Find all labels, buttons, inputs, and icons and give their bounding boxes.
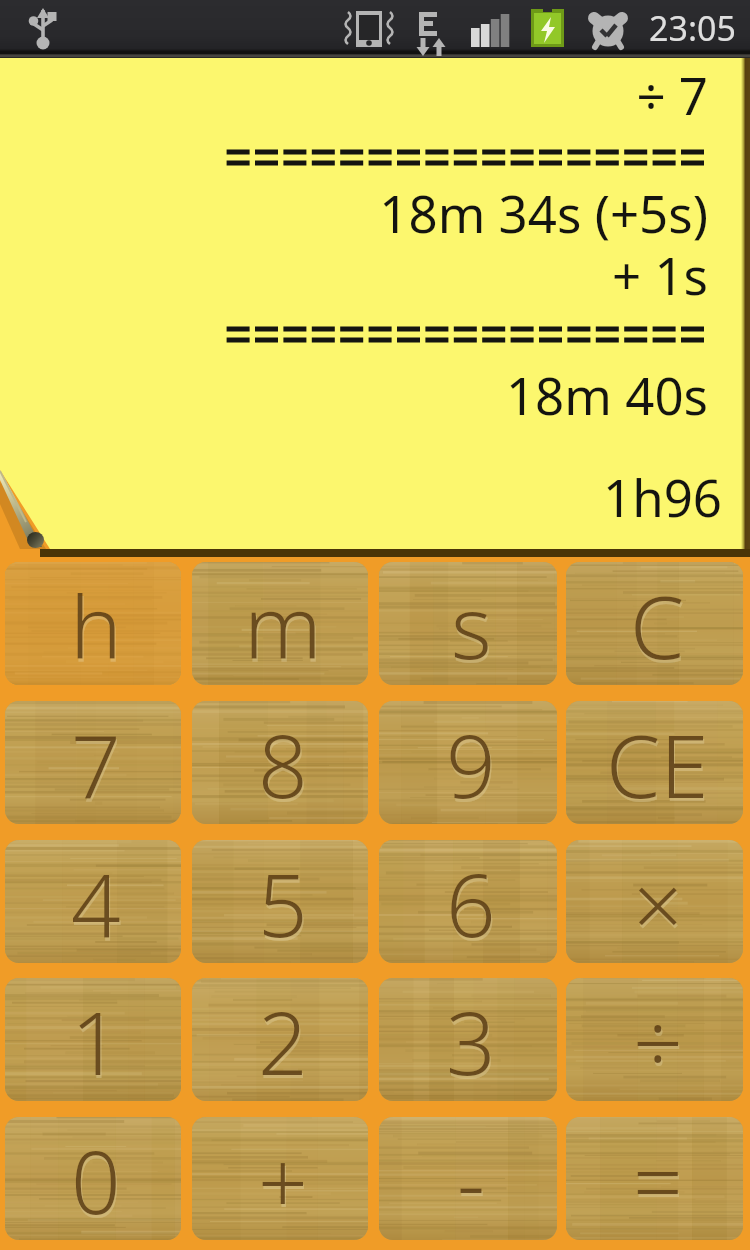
staticText: 1 <box>72 985 122 1101</box>
staticText: m <box>244 566 322 684</box>
button[interactable]: 3 <box>379 978 557 1101</box>
staticText: C <box>631 569 686 685</box>
staticText: m <box>245 569 323 685</box>
staticText: 8 <box>258 705 308 823</box>
staticText: ÷ <box>633 982 683 1100</box>
staticText: 9 <box>447 708 497 824</box>
button[interactable]: × <box>566 840 743 963</box>
staticText: + <box>259 1124 309 1240</box>
staticText: CE <box>606 705 709 823</box>
staticText: 7 <box>72 708 122 824</box>
staticText: 5 <box>258 844 308 962</box>
staticText: 6 <box>447 847 497 963</box>
staticText: 2 <box>258 982 308 1100</box>
button[interactable]: = <box>566 1117 743 1240</box>
button[interactable]: CE <box>566 701 743 824</box>
button[interactable]: h <box>5 562 181 685</box>
button[interactable]: 1 <box>5 978 181 1101</box>
button[interactable]: 8 <box>192 701 368 824</box>
button[interactable]: 9 <box>379 701 557 824</box>
button[interactable]: ÷ <box>566 978 743 1101</box>
staticText: 8 <box>259 708 309 824</box>
button[interactable]: 0 <box>5 1117 181 1240</box>
staticText: 7 <box>71 705 121 823</box>
staticText: 2 <box>259 985 309 1101</box>
staticText: 4 <box>72 847 122 963</box>
staticText: 18m 34s (+5s) <box>0 178 708 247</box>
staticText: 5 <box>259 847 309 963</box>
staticText: × <box>633 844 683 962</box>
button[interactable]: - <box>379 1117 557 1240</box>
staticText: - <box>458 1124 487 1240</box>
staticText: 23:05 <box>649 5 736 51</box>
button[interactable]: 5 <box>192 840 368 963</box>
staticText: × <box>634 847 684 963</box>
staticText: 18m 40s <box>0 360 708 429</box>
staticText: ÷ <box>634 985 684 1101</box>
staticText: 3 <box>446 982 496 1100</box>
staticText: 1h96 <box>0 462 722 531</box>
button[interactable]: 6 <box>379 840 557 963</box>
staticText: 3 <box>447 985 497 1101</box>
staticText: CE <box>607 708 710 824</box>
staticText: h <box>71 569 123 685</box>
staticText: 0 <box>71 1121 121 1239</box>
staticText: - <box>457 1121 486 1239</box>
button[interactable]: + <box>192 1117 368 1240</box>
staticText: + 1s <box>0 240 708 309</box>
staticText: s <box>451 566 492 684</box>
staticText: C <box>630 566 685 684</box>
button[interactable]: 4 <box>5 840 181 963</box>
staticText: = <box>633 1121 683 1239</box>
button[interactable]: s <box>379 562 557 685</box>
button[interactable]: C <box>566 562 743 685</box>
staticText: h <box>70 566 122 684</box>
staticText: + <box>258 1121 308 1239</box>
staticText: ÷ 7 <box>0 60 708 129</box>
staticText: 0 <box>72 1124 122 1240</box>
button[interactable]: 2 <box>192 978 368 1101</box>
staticText: = <box>634 1124 684 1240</box>
staticText: s <box>452 569 493 685</box>
button[interactable]: 7 <box>5 701 181 824</box>
staticText: 4 <box>71 844 121 962</box>
staticText: 6 <box>446 844 496 962</box>
staticText: 1 <box>71 982 121 1100</box>
button[interactable]: m <box>192 562 368 685</box>
staticText: 9 <box>446 705 496 823</box>
